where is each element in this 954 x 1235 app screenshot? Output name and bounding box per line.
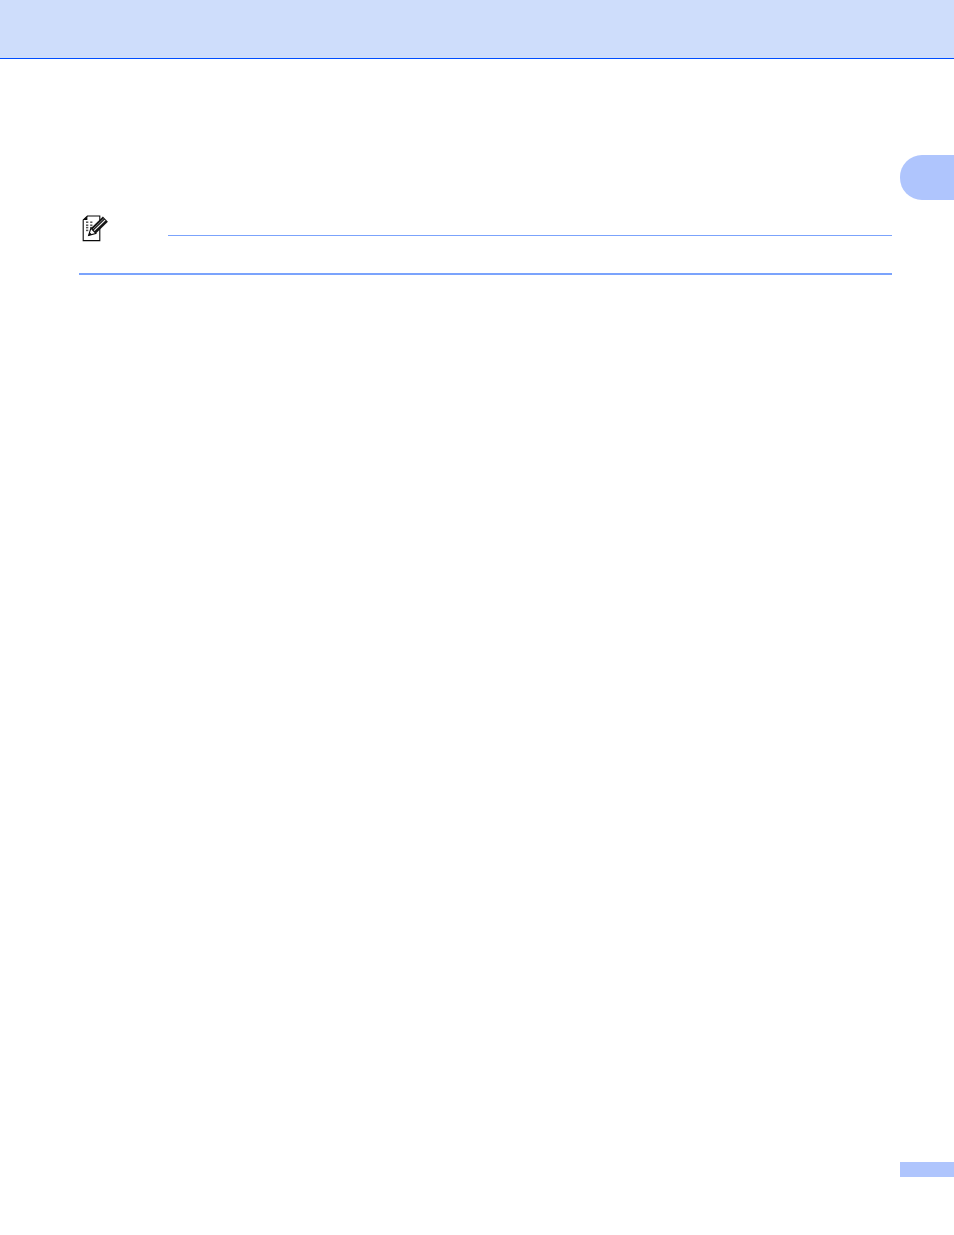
button[interactable]: Chapter tab <box>900 155 954 200</box>
button[interactable]: Note <box>79 212 892 275</box>
